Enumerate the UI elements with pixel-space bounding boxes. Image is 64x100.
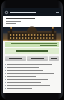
button[interactable] xyxy=(5,63,59,66)
button[interactable] xyxy=(5,69,59,72)
other: Menu xyxy=(5,11,8,14)
button[interactable]: Menu xyxy=(3,8,61,16)
button[interactable] xyxy=(5,66,59,69)
button[interactable]: Mosque photo xyxy=(3,27,61,41)
button[interactable] xyxy=(49,56,59,61)
button[interactable] xyxy=(5,81,59,84)
button[interactable] xyxy=(5,72,59,75)
button[interactable] xyxy=(27,56,48,61)
button[interactable] xyxy=(5,75,59,78)
button[interactable] xyxy=(5,56,26,61)
button[interactable] xyxy=(5,84,59,87)
button[interactable] xyxy=(5,87,59,90)
button[interactable] xyxy=(5,78,59,81)
